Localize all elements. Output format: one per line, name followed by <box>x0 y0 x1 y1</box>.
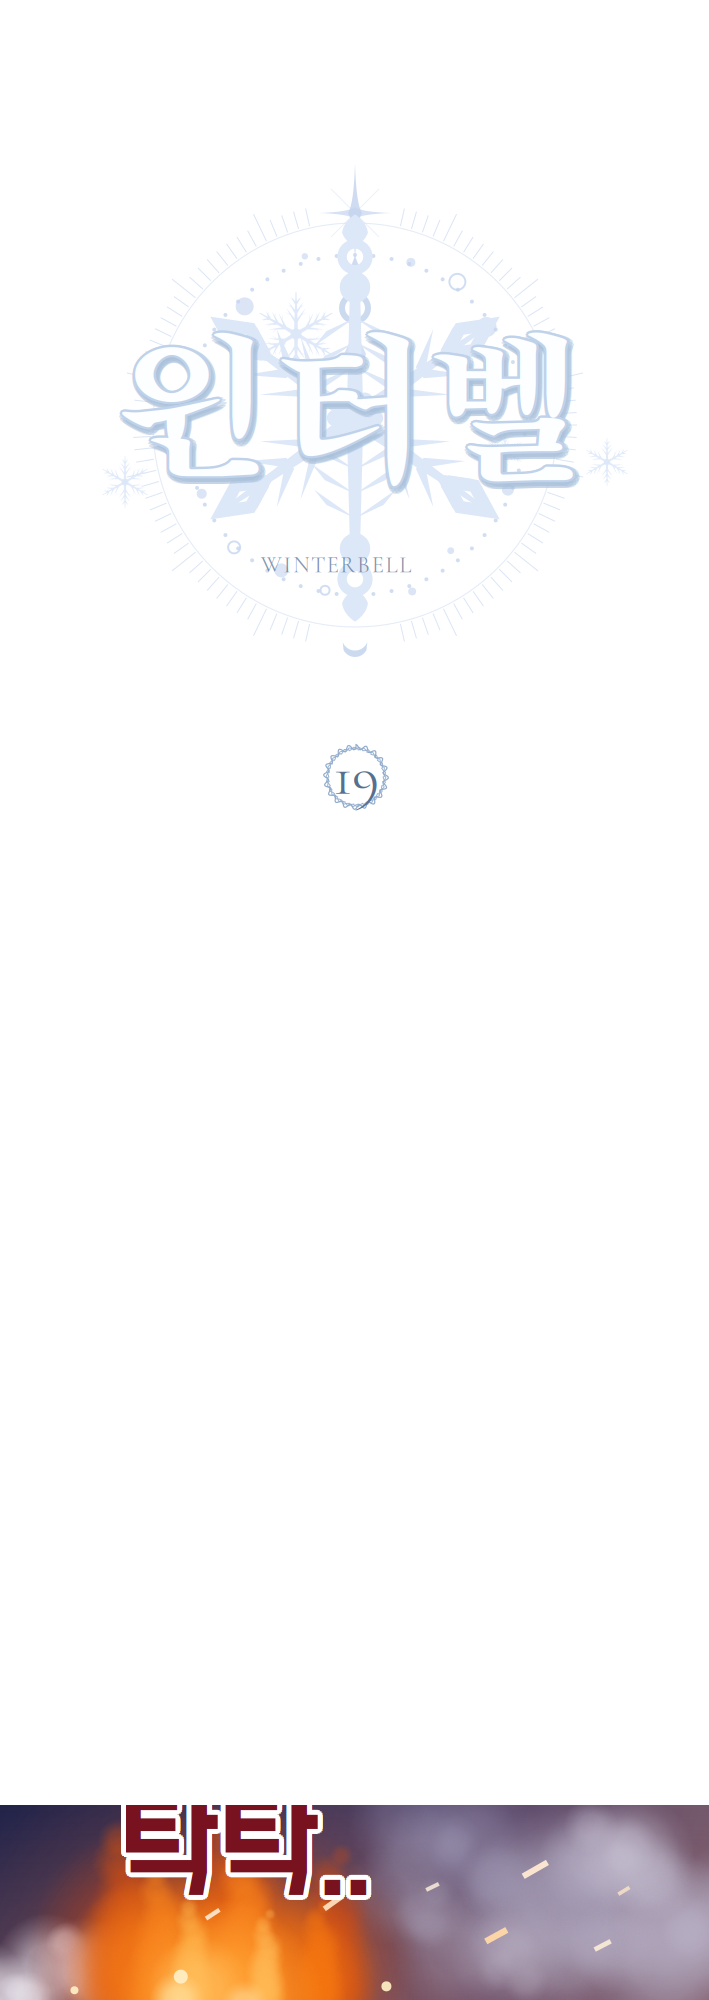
staticText: E <box>327 551 339 579</box>
staticText: 윈터벨 <box>122 323 593 501</box>
staticText: E <box>372 551 384 579</box>
staticText: 윈터벨 <box>123 330 594 509</box>
staticText: 윈터벨 <box>123 321 594 500</box>
staticText: 윈터벨 <box>126 326 597 504</box>
staticText: L <box>385 551 397 579</box>
staticText: 탁탁.. <box>120 1792 372 1923</box>
staticText: L <box>399 551 411 579</box>
staticText: 윈터벨 <box>117 323 588 501</box>
staticText: 탁탁.. <box>122 1784 374 1915</box>
staticText: 탁탁.. <box>119 1782 371 1913</box>
staticText: R <box>340 551 355 579</box>
staticText: 탁탁.. <box>114 1789 366 1920</box>
staticText: 탁탁.. <box>114 1785 366 1916</box>
staticText: 윈터벨 <box>116 326 587 504</box>
staticText: 탁탁.. <box>119 1787 371 1918</box>
staticText: 탁탁.. <box>117 1792 369 1923</box>
staticText: 윈터벨 <box>118 324 589 503</box>
staticText: 탁탁.. <box>123 1785 375 1916</box>
staticText: 윈터벨 <box>119 323 590 501</box>
staticText: 탁탁.. <box>117 1783 369 1913</box>
staticText: 윈터벨 <box>118 321 589 500</box>
staticText: 탁탁.. <box>115 1791 367 1922</box>
staticText: 윈터벨 <box>120 330 591 509</box>
staticText: 탁탁.. <box>119 1792 371 1923</box>
staticText: T <box>311 551 325 579</box>
staticText: 윈터벨 <box>125 323 596 501</box>
staticText: 탁탁.. <box>123 1789 375 1920</box>
staticText: W <box>261 551 282 579</box>
staticText: 탁탁.. <box>124 1787 376 1918</box>
staticText: 윈터벨 <box>125 329 596 507</box>
staticText: 윈터벨 <box>117 323 588 501</box>
staticText: 윈터벨 <box>121 321 592 500</box>
staticText: 윈터벨 <box>117 329 588 507</box>
staticText: I <box>284 551 292 579</box>
staticText: B <box>357 551 370 579</box>
staticText: 19 <box>333 739 379 810</box>
staticText: 윈터벨 <box>119 320 590 499</box>
staticText: 탁탁.. <box>115 1784 367 1915</box>
staticText: 윈터벨 <box>120 321 591 500</box>
staticText: 탁탁.. <box>114 1787 366 1918</box>
staticText: 윈터벨 <box>121 324 592 503</box>
staticText: 탁탁.. <box>120 1783 372 1913</box>
staticText: 윈터벨 <box>119 325 590 504</box>
staticText: 탁탁.. <box>122 1791 374 1922</box>
staticText: N <box>293 551 309 579</box>
